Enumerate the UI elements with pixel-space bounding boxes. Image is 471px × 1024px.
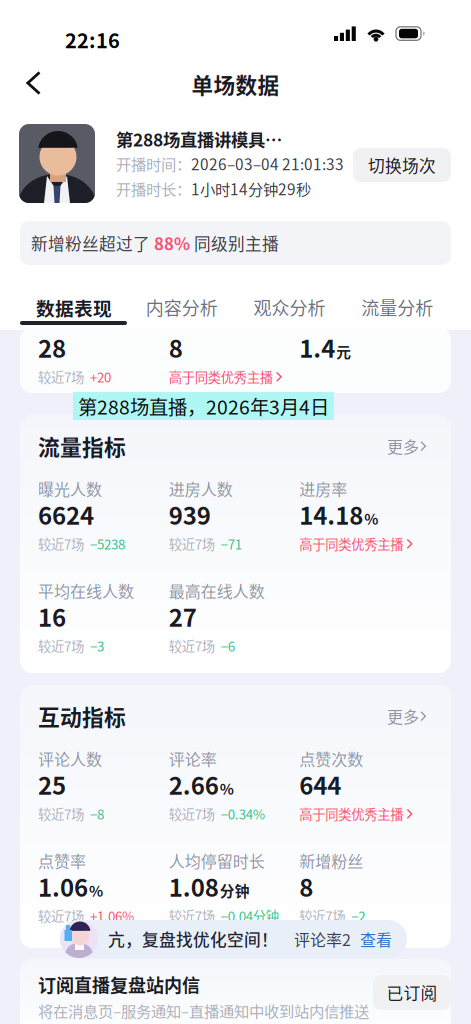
staticText (215, 906, 221, 925)
staticText (345, 906, 351, 925)
staticText: 进房人数 (169, 477, 233, 500)
staticText: 更多 (387, 434, 419, 458)
staticText (84, 906, 90, 925)
staticText: 订阅直播复盘站内信 (38, 971, 200, 998)
staticText: 1.08 (169, 869, 219, 904)
staticText: 较近7场 (38, 804, 84, 823)
staticText: −6 (221, 636, 235, 655)
staticText: 1.06 (38, 869, 88, 904)
staticText: 16 (38, 599, 66, 634)
staticText: 开播时长： (116, 177, 191, 200)
staticText: −71 (221, 534, 242, 553)
button[interactable]: 内容分析 (128, 294, 236, 316)
staticText: 高于同类优秀主播 (299, 534, 403, 553)
staticText: −5238 (90, 534, 125, 553)
staticText: 同级别主播 (190, 231, 279, 255)
staticText: 较近7场 (169, 906, 215, 925)
button[interactable]: 切换场次 (353, 148, 451, 182)
staticText: 14.18 (299, 497, 363, 532)
staticText: 939 (169, 497, 211, 532)
button[interactable]: 数据表现 (20, 294, 128, 316)
staticText: 较近7场 (299, 906, 345, 925)
staticText: −0.34% (221, 804, 265, 823)
staticText: 流量分析 (361, 294, 433, 316)
staticText: 将在消息页–服务通知–直播通知中收到站内信推送 (38, 999, 369, 1022)
staticText: 人均停留时长 (169, 849, 265, 872)
staticText: 互动指标 (38, 700, 126, 732)
staticText: 25 (38, 767, 66, 802)
staticText: 8 (299, 869, 313, 904)
staticText: 27 (169, 599, 197, 634)
staticText: 较近7场 (38, 636, 84, 655)
staticText: 观众分析 (253, 294, 325, 316)
staticText: 较近7场 (38, 534, 84, 553)
staticText: 开播时间： (116, 152, 191, 175)
button[interactable]: 已订阅 (373, 975, 451, 1010)
staticText: 2026–03–04 21:01:33 (191, 152, 344, 175)
staticText: 28 (38, 330, 66, 365)
button[interactable]: 流量分析 (343, 294, 451, 316)
staticText: +1.06% (90, 906, 134, 925)
staticText: 评论率2 (294, 927, 351, 951)
staticText: 内容分析 (146, 294, 218, 316)
staticText: 6624 (38, 497, 94, 532)
staticText: 1小时14分钟29秒 (191, 177, 311, 200)
staticText: 较近7场 (169, 636, 215, 655)
staticText: −8 (90, 804, 104, 823)
staticText: 流量指标 (38, 430, 126, 462)
staticText: 新增粉丝超过了 (31, 231, 154, 255)
staticText: 元 (336, 341, 351, 362)
staticText: 较近7场 (169, 534, 215, 553)
staticText: 较近7场 (38, 906, 84, 925)
staticText: 最高在线人数 (169, 579, 265, 602)
staticText: 查看 (360, 927, 392, 951)
staticText: 高于同类优秀主播 (299, 804, 403, 823)
staticText: −0.04分钟 (221, 906, 279, 925)
staticText: 点赞率 (38, 849, 86, 872)
staticText: 亢，复盘找优化空间！ (108, 927, 278, 951)
staticText: −2 (351, 906, 365, 925)
staticText: 22:16 (65, 25, 120, 54)
button[interactable]: 更多 (387, 430, 430, 462)
staticText: % (364, 508, 378, 529)
staticText: 高于同类优秀主播 (169, 367, 273, 386)
staticText: % (89, 880, 103, 901)
staticText: +20 (90, 367, 111, 386)
staticText: 更多 (387, 704, 419, 728)
staticText: 已订阅 (386, 980, 437, 1004)
staticText: 切换场次 (368, 153, 436, 177)
staticText: 评论人数 (38, 747, 102, 770)
staticText: 数据表现 (36, 294, 112, 316)
button[interactable]: 查看 (351, 919, 392, 959)
staticText: 平均在线人数 (38, 579, 134, 602)
staticText: 分钟 (220, 880, 250, 901)
staticText: 第288场直播讲模具… (116, 126, 282, 152)
staticText: 点赞次数 (299, 747, 363, 770)
staticText: 进房率 (299, 477, 347, 500)
staticText: 曝光人数 (38, 477, 102, 500)
staticText: 新增粉丝 (299, 849, 363, 872)
button[interactable]: 观众分析 (235, 294, 343, 316)
staticText: −3 (90, 636, 104, 655)
button[interactable]: Back (12, 58, 55, 108)
staticText: 第288场直播，2026年3月4日 (78, 392, 329, 420)
staticText: 较近7场 (169, 804, 215, 823)
staticText: 单场数据 (191, 68, 279, 100)
staticText: 8 (169, 330, 183, 365)
button[interactable]: 更多 (387, 700, 430, 732)
staticText: 644 (299, 767, 341, 802)
staticText: 评论率 (169, 747, 217, 770)
staticText: 2.66 (169, 767, 219, 802)
staticText: 较近7场 (38, 367, 84, 386)
staticText: 1.4 (299, 330, 335, 365)
staticText: 88% (154, 231, 190, 255)
staticText: % (220, 778, 234, 799)
